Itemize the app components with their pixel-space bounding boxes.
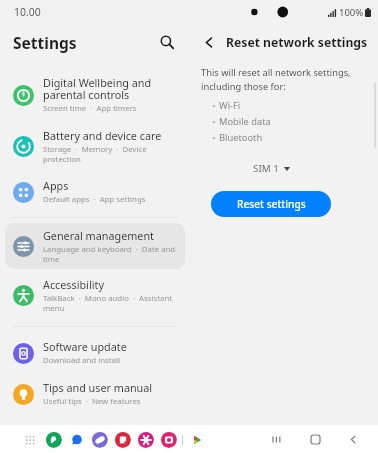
staticText: Useful tips · New features	[43, 396, 141, 407]
staticText: This will reset all network settings, in…	[201, 66, 364, 92]
button[interactable]: Camera	[160, 431, 177, 448]
button[interactable]: Software update	[5, 334, 185, 371]
button[interactable]: Accessibility	[5, 272, 185, 318]
button[interactable]: Apps	[22, 432, 38, 448]
button[interactable]: Apps	[5, 173, 185, 210]
button[interactable]: Messages	[68, 431, 85, 448]
button[interactable]: Back	[342, 428, 364, 450]
staticText: TalkBack · Mono audio · Assistant menu	[43, 293, 179, 313]
button[interactable]: Gallery	[114, 431, 131, 448]
button[interactable]: Back	[198, 31, 220, 53]
staticText: Battery and device care	[43, 128, 162, 143]
staticText: Software update	[43, 339, 127, 354]
button[interactable]: Phone	[45, 431, 62, 448]
button[interactable]: Play Store	[188, 431, 205, 448]
staticText: Reset network settings	[226, 34, 368, 51]
staticText: Tips and user manual	[43, 380, 153, 395]
staticText: Download and install	[43, 355, 120, 366]
staticText: Mobile data	[219, 115, 271, 128]
staticText: 100%	[339, 6, 364, 19]
staticText: Reset settings	[237, 197, 306, 211]
staticText: General management	[43, 228, 154, 243]
button[interactable]: Settings app	[137, 431, 154, 448]
staticText: Apps	[43, 178, 69, 193]
button[interactable]: General management	[5, 223, 185, 269]
staticText: Bluetooth	[219, 131, 263, 144]
staticText: Settings	[13, 32, 77, 53]
button[interactable]: Battery and device care	[5, 123, 185, 169]
staticText: Default apps · App settings	[43, 194, 146, 205]
button[interactable]: Recents	[266, 428, 288, 450]
button[interactable]: Digital Wellbeing and parental controls	[5, 70, 185, 119]
button[interactable]: Tips and user manual	[5, 375, 185, 412]
staticText: Digital Wellbeing and parental controls	[43, 75, 179, 102]
staticText: 10.00	[14, 5, 41, 19]
button[interactable]: Browser	[91, 431, 108, 448]
button[interactable]: Reset settings	[211, 191, 331, 217]
button[interactable]: Search	[154, 29, 180, 55]
staticText: Accessibility	[43, 277, 104, 292]
staticText: Language and keyboard · Date and time	[43, 244, 179, 264]
button[interactable]: Home	[304, 428, 326, 450]
button[interactable]: SIM 1	[190, 162, 352, 175]
staticText: Wi-Fi	[219, 99, 241, 112]
staticText: SIM 1	[253, 162, 279, 175]
staticText: Storage · Memory · Device protection	[43, 144, 179, 164]
staticText: Screen time · App timers	[43, 103, 137, 114]
